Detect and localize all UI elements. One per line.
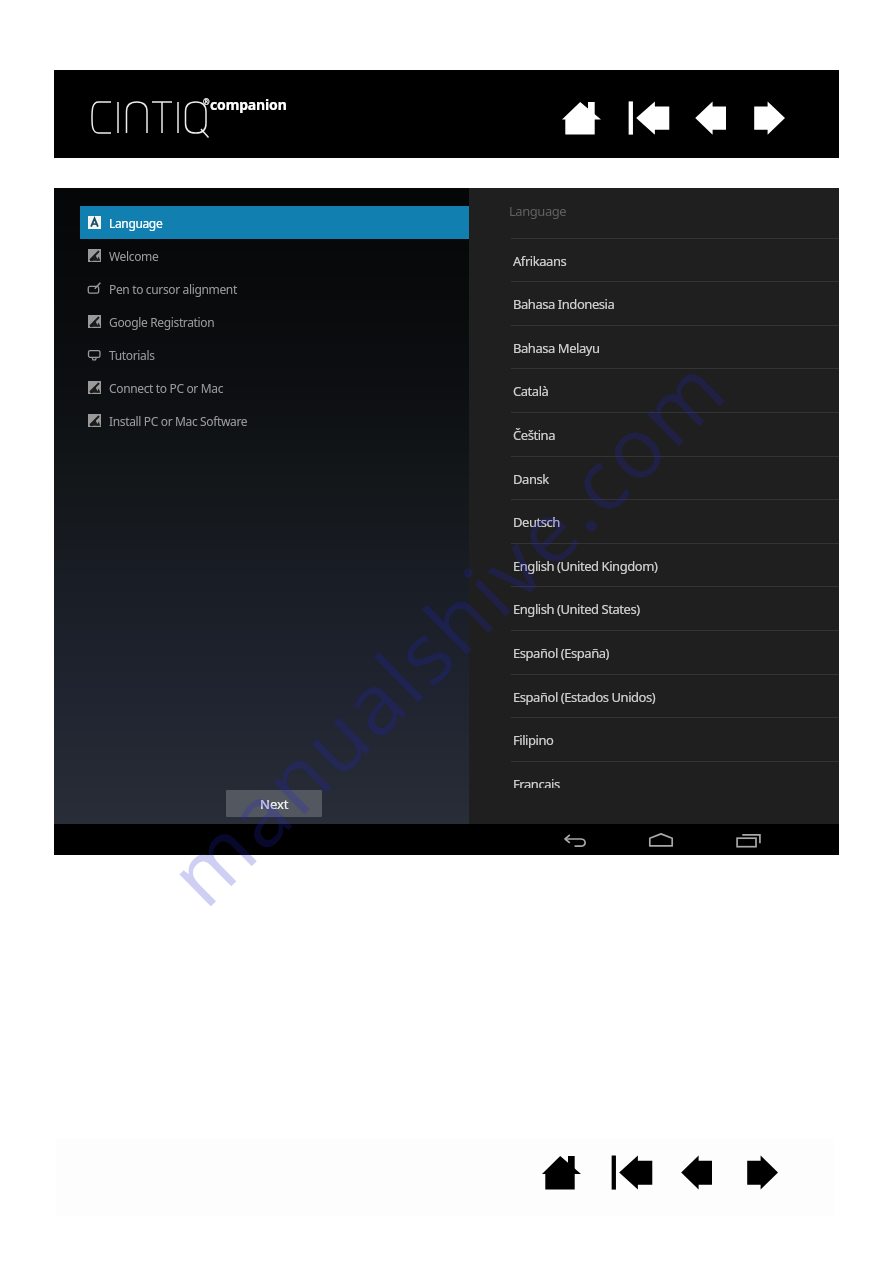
staticText: Welcome bbox=[109, 248, 159, 264]
staticText: Language bbox=[509, 202, 567, 220]
button[interactable]: Español (Estados Unidos) bbox=[469, 675, 839, 718]
button[interactable]: Next bbox=[226, 790, 322, 817]
button[interactable]: Home bbox=[647, 828, 675, 851]
button[interactable]: Welcome bbox=[80, 239, 469, 272]
button[interactable]: Čeština bbox=[469, 413, 839, 456]
button[interactable]: Català bbox=[469, 369, 839, 412]
button[interactable]: Next page bbox=[744, 1151, 784, 1191]
button[interactable]: Connect to PC or Mac bbox=[80, 371, 469, 404]
staticText: Tutorials bbox=[109, 347, 155, 363]
staticText: Bahasa Melayu bbox=[513, 339, 600, 357]
staticText: Dansk bbox=[513, 470, 549, 488]
button[interactable]: English (United States) bbox=[469, 587, 839, 630]
staticText: Bahasa Indonesia bbox=[513, 295, 615, 313]
button[interactable]: Dansk bbox=[469, 457, 839, 500]
staticText: Français bbox=[513, 775, 560, 788]
button[interactable]: English (United Kingdom) bbox=[469, 544, 839, 587]
staticText: manualshive.com bbox=[142, 330, 745, 924]
button[interactable]: Pen to cursor alignment bbox=[80, 272, 469, 305]
button[interactable]: Recent apps bbox=[735, 828, 763, 851]
button[interactable]: Go to first page bbox=[628, 97, 671, 136]
button[interactable]: Google Registration bbox=[80, 305, 469, 338]
button[interactable]: Bahasa Melayu bbox=[469, 326, 839, 369]
staticText: Čeština bbox=[513, 426, 555, 444]
button[interactable]: Home bbox=[542, 1151, 582, 1191]
staticText: Español (Estados Unidos) bbox=[513, 688, 656, 706]
button[interactable]: Filipino bbox=[469, 718, 839, 761]
button[interactable]: Next page bbox=[751, 97, 791, 136]
button[interactable]: Bahasa Indonesia bbox=[469, 282, 839, 325]
staticText: English (United States) bbox=[513, 600, 640, 618]
staticText: Deutsch bbox=[513, 513, 560, 531]
staticText: Afrikaans bbox=[513, 252, 567, 270]
button[interactable]: Tutorials bbox=[80, 338, 469, 371]
button[interactable]: Install PC or Mac Software bbox=[80, 404, 469, 437]
button[interactable]: Español (España) bbox=[469, 631, 839, 674]
button[interactable]: Previous page bbox=[678, 1151, 718, 1191]
button[interactable]: Previous page bbox=[692, 97, 732, 136]
button[interactable]: Language bbox=[509, 202, 567, 220]
staticText: Español (España) bbox=[513, 644, 610, 662]
staticText: Pen to cursor alignment bbox=[109, 281, 237, 297]
staticText: Connect to PC or Mac bbox=[109, 380, 224, 396]
button[interactable]: Français bbox=[469, 762, 839, 788]
staticText: companion bbox=[210, 95, 287, 114]
staticText: Next bbox=[260, 795, 289, 813]
staticText: Install PC or Mac Software bbox=[109, 413, 248, 429]
staticText: ® bbox=[203, 96, 210, 107]
staticText: Language bbox=[109, 215, 163, 231]
button[interactable]: Back bbox=[560, 828, 588, 851]
button[interactable]: Deutsch bbox=[469, 500, 839, 543]
staticText: Filipino bbox=[513, 731, 554, 749]
button[interactable]: Language bbox=[80, 206, 469, 239]
button[interactable]: Home bbox=[562, 97, 602, 136]
staticText: English (United Kingdom) bbox=[513, 557, 658, 575]
staticText: Català bbox=[513, 382, 549, 400]
button[interactable]: Afrikaans bbox=[469, 239, 839, 282]
staticText: Google Registration bbox=[109, 314, 215, 330]
button[interactable]: Go to first page bbox=[611, 1151, 654, 1191]
